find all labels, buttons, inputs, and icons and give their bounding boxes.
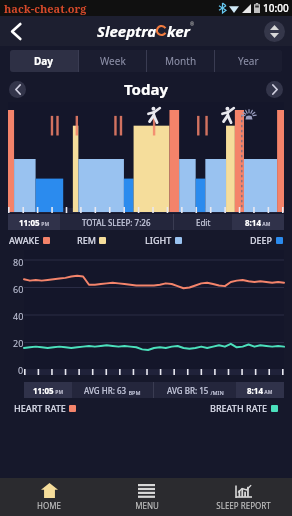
staticText: BREATH RATE	[210, 402, 268, 414]
staticText: Today	[124, 79, 169, 99]
staticText: AWAKE	[9, 234, 40, 246]
button[interactable]: Back	[4, 19, 28, 43]
staticText: PM	[54, 389, 64, 396]
button[interactable]: Day	[10, 50, 78, 72]
staticText: REM	[77, 234, 96, 246]
staticText: BPM	[127, 389, 141, 396]
staticText: SLEEP REPORT	[216, 500, 271, 511]
staticText: DEEP	[250, 234, 273, 246]
staticText: AVG HR: 63	[84, 385, 127, 396]
staticText: ker	[167, 21, 190, 41]
staticText: TOTAL SLEEP: 7:26	[82, 217, 151, 228]
button[interactable]: Week	[79, 50, 146, 72]
staticText: AM	[263, 389, 273, 396]
button[interactable]: Edit	[174, 214, 232, 230]
staticText: Sleeptra	[97, 21, 157, 41]
staticText: Month	[165, 54, 197, 68]
button[interactable]: MENU	[98, 478, 195, 516]
staticText: /MIN	[209, 389, 224, 396]
staticText: HOME	[37, 500, 61, 511]
staticText: MENU	[135, 500, 159, 511]
staticText: hack-cheat.org	[4, 1, 87, 16]
staticText: LIGHT	[145, 234, 172, 246]
staticText: AM	[261, 221, 271, 228]
staticText: 60	[13, 283, 24, 295]
staticText: Week	[100, 54, 126, 68]
button[interactable]: Next day	[266, 81, 283, 98]
staticText: 0	[18, 364, 24, 376]
staticText: 40	[13, 310, 24, 322]
button[interactable]: Previous day	[9, 81, 26, 98]
button[interactable]: HOME	[0, 478, 98, 516]
button[interactable]: Adjust	[264, 21, 285, 42]
staticText: 80	[13, 256, 24, 268]
staticText: AVG BR: 15	[167, 385, 209, 396]
staticText: PM	[40, 221, 50, 228]
staticText: Day	[34, 54, 54, 68]
button[interactable]: Year	[215, 50, 282, 72]
staticText: 8:14	[247, 385, 263, 396]
staticText: 20	[13, 337, 24, 349]
staticText: Year	[238, 54, 259, 68]
button[interactable]: Month	[147, 50, 214, 72]
staticText: Edit	[196, 217, 211, 228]
staticText: 11:05	[33, 385, 54, 396]
staticText: ®	[190, 21, 195, 28]
staticText: 10:00	[263, 1, 289, 15]
staticText: 11:05	[19, 217, 40, 228]
staticText: HEART RATE	[14, 402, 66, 414]
staticText: 8:14	[245, 217, 261, 228]
button[interactable]: SLEEP REPORT	[195, 478, 292, 516]
